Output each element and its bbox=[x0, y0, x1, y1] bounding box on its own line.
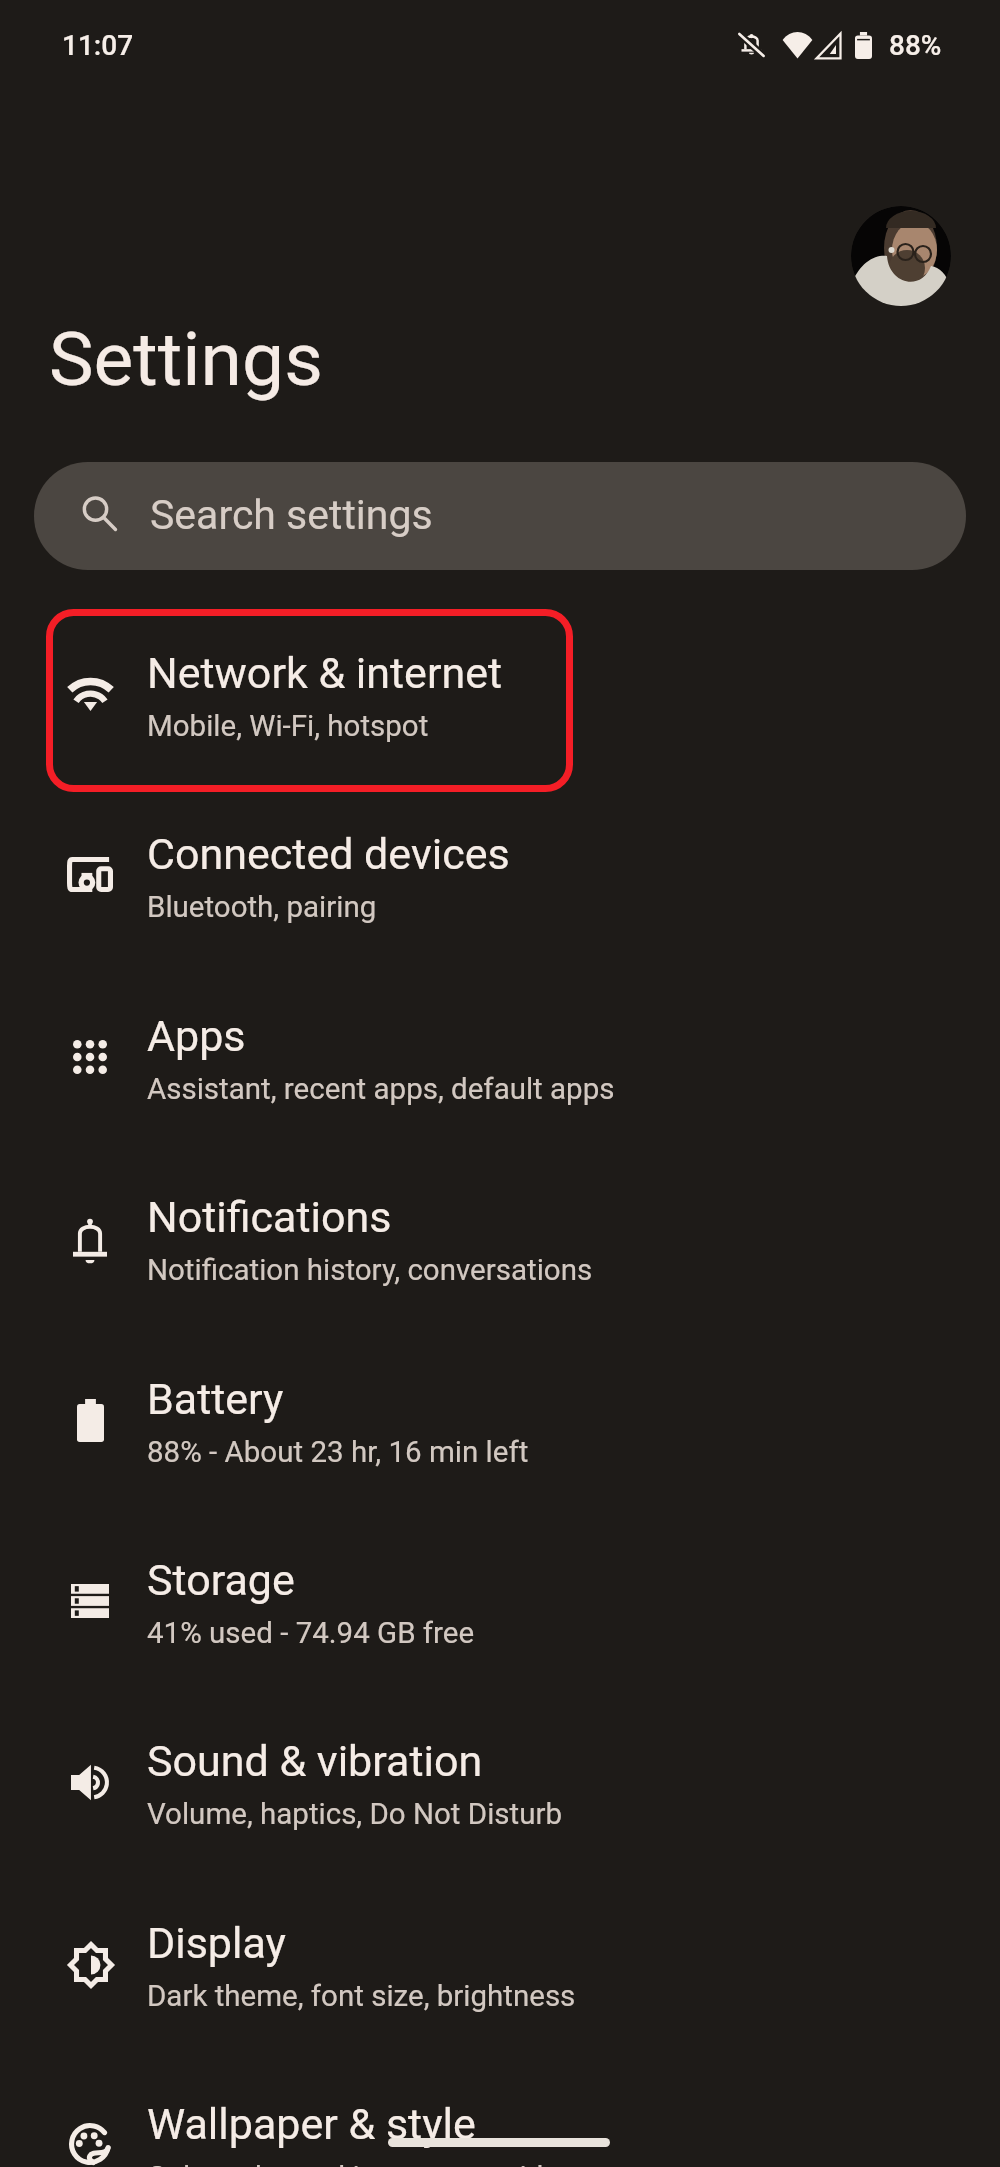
button[interactable]: Battery bbox=[0, 1335, 1000, 1516]
staticText: Wallpaper & style bbox=[147, 2099, 476, 2149]
button[interactable]: Apps bbox=[0, 972, 1000, 1153]
staticText: Connected devices bbox=[147, 829, 510, 879]
staticText: Settings bbox=[49, 315, 323, 403]
staticText: Volume, haptics, Do Not Disturb bbox=[147, 1797, 563, 1832]
staticText: Battery bbox=[147, 1374, 284, 1424]
button[interactable]: Search settings bbox=[34, 462, 966, 570]
staticText: Colors, themed icons, app grid bbox=[147, 2160, 544, 2167]
staticText: Search settings bbox=[150, 491, 433, 539]
staticText: 88% - About 23 hr, 16 min left bbox=[147, 1435, 529, 1470]
staticText: 41% used - 74.94 GB free bbox=[147, 1616, 475, 1651]
staticText: Mobile, Wi-Fi, hotspot bbox=[147, 709, 429, 744]
button[interactable]: Network & internet bbox=[0, 609, 1000, 790]
button[interactable]: Wallpaper & style bbox=[0, 2060, 1000, 2167]
staticText: Display bbox=[147, 1918, 286, 1968]
staticText: 88% bbox=[889, 29, 942, 62]
staticText: Storage bbox=[147, 1555, 295, 1605]
staticText: 11:07 bbox=[62, 29, 134, 62]
button[interactable]: Display bbox=[0, 1879, 1000, 2060]
staticText: Dark theme, font size, brightness bbox=[147, 1979, 576, 2014]
staticText: Apps bbox=[147, 1011, 246, 1061]
staticText: Assistant, recent apps, default apps bbox=[147, 1072, 615, 1107]
button[interactable]: Notifications bbox=[0, 1153, 1000, 1334]
staticText: Network & internet bbox=[147, 648, 503, 698]
button[interactable]: Connected devices bbox=[0, 790, 1000, 971]
staticText: Notifications bbox=[147, 1192, 392, 1242]
staticText: Notification history, conversations bbox=[147, 1253, 593, 1288]
staticText: Sound & vibration bbox=[147, 1736, 483, 1786]
button[interactable]: Account bbox=[851, 206, 951, 306]
button[interactable]: Storage bbox=[0, 1516, 1000, 1697]
button[interactable]: Sound & vibration bbox=[0, 1697, 1000, 1878]
staticText: Bluetooth, pairing bbox=[147, 890, 377, 925]
